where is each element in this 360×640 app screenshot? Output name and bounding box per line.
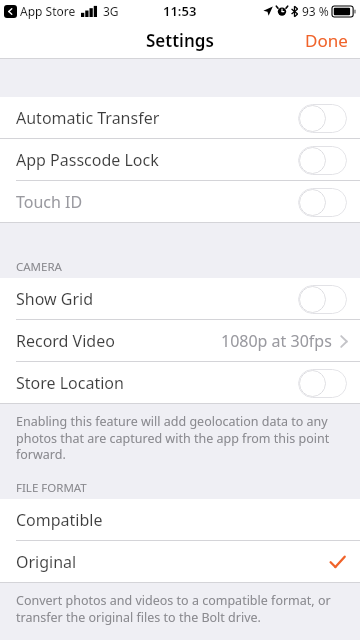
- button[interactable]: Store Location: [0, 362, 360, 404]
- staticText: Store Location: [16, 372, 124, 394]
- staticText: App Store: [20, 3, 76, 19]
- staticText: Show Grid: [16, 288, 93, 310]
- staticText: Touch ID: [16, 191, 83, 213]
- staticText: Settings: [146, 29, 214, 52]
- button[interactable]: Touch ID: [0, 181, 360, 223]
- button[interactable]: Toggle: [298, 285, 347, 314]
- staticText: 1080p at 30fps: [221, 330, 332, 352]
- button[interactable]: Toggle: [298, 369, 347, 398]
- button[interactable]: Toggle: [298, 146, 347, 175]
- button[interactable]: Toggle: [298, 104, 347, 133]
- staticText: 11:53: [163, 2, 197, 20]
- button[interactable]: Compatible: [0, 499, 360, 541]
- staticText: Automatic Transfer: [16, 107, 160, 129]
- button[interactable]: App Passcode Lock: [0, 139, 360, 181]
- staticText: FILE FORMAT: [16, 480, 87, 496]
- staticText: Compatible: [16, 509, 103, 531]
- staticText: Record Video: [16, 330, 115, 352]
- staticText: Enabling this feature will add geolocati…: [16, 413, 344, 462]
- staticText: Original: [16, 551, 77, 573]
- button[interactable]: Automatic Transfer: [0, 97, 360, 139]
- button[interactable]: Record Video: [0, 320, 360, 362]
- staticText: Done: [305, 29, 348, 52]
- staticText: CAMERA: [16, 259, 62, 275]
- staticText: 93 %: [302, 3, 329, 19]
- button[interactable]: Done: [293, 23, 360, 58]
- button[interactable]: Toggle: [298, 188, 347, 217]
- button[interactable]: Show Grid: [0, 278, 360, 320]
- staticText: App Passcode Lock: [16, 149, 159, 171]
- staticText: Convert photos and videos to a compatibl…: [16, 592, 344, 625]
- button[interactable]: Original: [0, 541, 360, 583]
- staticText: 3G: [103, 3, 119, 19]
